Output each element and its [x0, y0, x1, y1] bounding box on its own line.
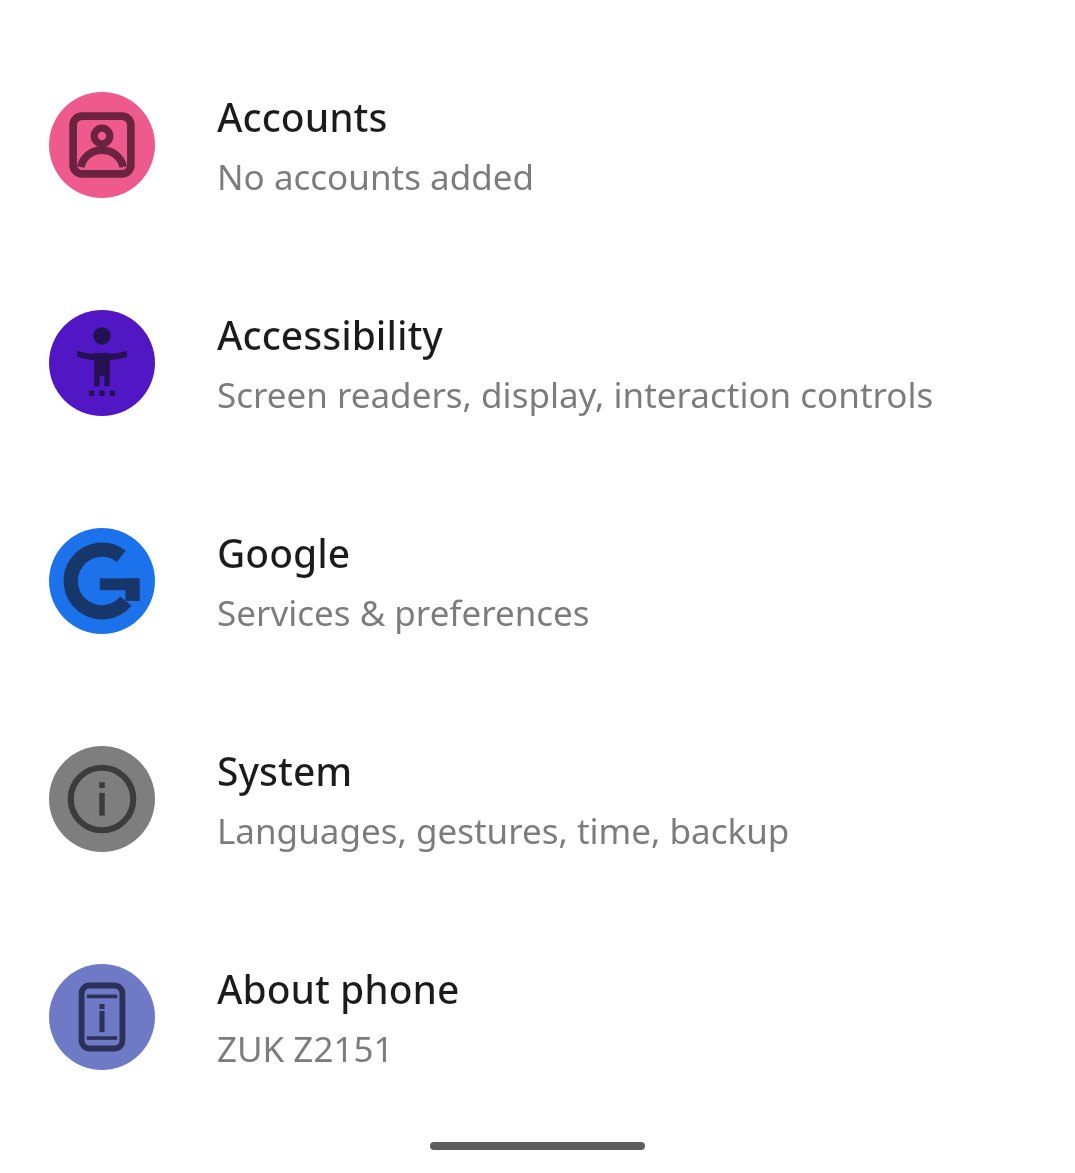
button[interactable]: Accessibility — [0, 254, 1075, 472]
button[interactable]: Google — [0, 472, 1075, 690]
staticText: Accounts — [217, 90, 388, 143]
button[interactable]: About phone — [0, 908, 1075, 1126]
staticText: Languages, gestures, time, backup — [217, 807, 790, 855]
staticText: Services & preferences — [217, 589, 590, 637]
staticText: System — [217, 744, 353, 797]
staticText: About phone — [217, 962, 460, 1015]
staticText: Accessibility — [217, 308, 443, 361]
staticText: Google — [217, 526, 351, 579]
button[interactable]: Accounts — [0, 36, 1075, 254]
staticText: Screen readers, display, interaction con… — [217, 371, 934, 419]
staticText: ZUK Z2151 — [217, 1025, 394, 1073]
button[interactable]: System — [0, 690, 1075, 908]
staticText: No accounts added — [217, 153, 534, 201]
